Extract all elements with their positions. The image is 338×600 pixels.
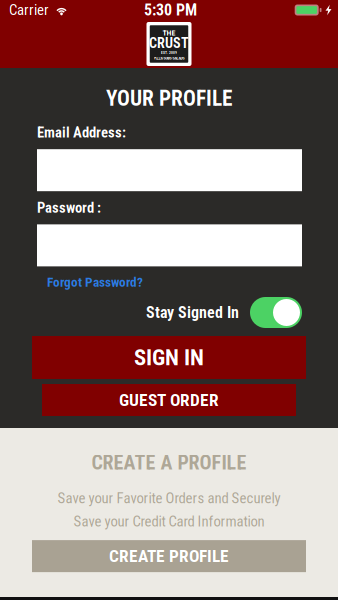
staticText: PIZZA·SUBS·SALADS bbox=[153, 56, 184, 61]
staticText: Carrier bbox=[9, 1, 49, 19]
button[interactable]: Email Address: bbox=[37, 149, 302, 191]
staticText: Save your Favorite Orders and Securely bbox=[57, 489, 280, 507]
staticText: CRUST bbox=[149, 35, 189, 52]
staticText: Stay Signed In bbox=[146, 303, 239, 322]
button[interactable]: Stay Signed In bbox=[250, 297, 302, 328]
button[interactable]: Forgot Password? bbox=[37, 266, 143, 290]
staticText: THE bbox=[162, 28, 175, 37]
staticText: SIGN IN bbox=[134, 344, 204, 371]
staticText: GUEST ORDER bbox=[119, 390, 219, 410]
staticText: CREATE A PROFILE bbox=[91, 451, 246, 474]
staticText: CREATE PROFILE bbox=[109, 546, 229, 566]
staticText: EST. 2009 bbox=[161, 51, 177, 55]
staticText: Password : bbox=[37, 199, 101, 216]
staticText: YOUR PROFILE bbox=[106, 86, 232, 111]
button[interactable]: Password : bbox=[37, 224, 302, 266]
staticText: Save your Credit Card Information bbox=[73, 513, 264, 530]
staticText: Email Address: bbox=[37, 124, 126, 141]
staticText: 5:30 PM bbox=[144, 1, 197, 19]
button[interactable]: GUEST ORDER bbox=[42, 384, 296, 416]
button[interactable]: CREATE PROFILE bbox=[32, 540, 306, 572]
button[interactable]: SIGN IN bbox=[32, 336, 306, 379]
staticText: Forgot Password? bbox=[47, 274, 143, 290]
